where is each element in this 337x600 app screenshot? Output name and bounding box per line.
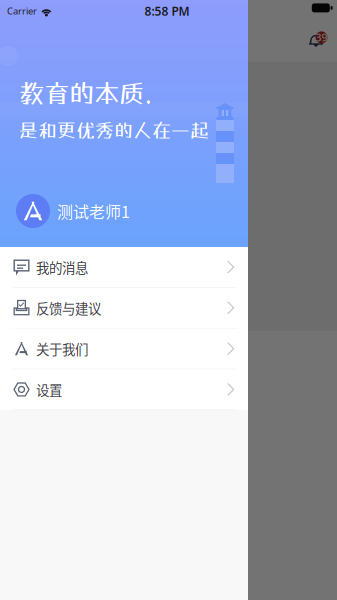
staticText: 39 [315,30,327,44]
staticText: 测试老师1 [57,199,130,223]
staticText: 反馈与建议 [36,298,101,318]
button[interactable]: 我的消息 [0,247,248,288]
staticText: Carrier [7,5,37,17]
staticText: 教育的本质， [19,78,169,108]
button[interactable]: 关于我们 [0,329,248,369]
staticText: 我的消息 [36,257,88,277]
staticText: 设置 [36,380,62,399]
button[interactable]: 测试老师1 [0,186,248,236]
staticText: 是和更优秀的人在一起 [19,119,209,141]
button[interactable]: 设置 [0,369,248,410]
staticText: 关于我们 [36,339,88,358]
button[interactable]: Notifications [309,26,337,53]
button[interactable]: 反馈与建议 [0,288,248,329]
staticText: 8:58 PM [144,3,189,19]
